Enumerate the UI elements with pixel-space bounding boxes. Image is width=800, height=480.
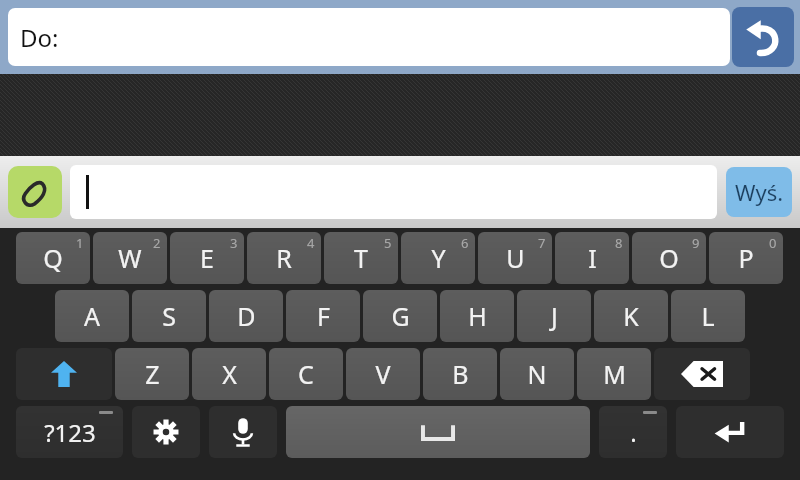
staticText: Q bbox=[43, 241, 63, 275]
button[interactable]: V bbox=[346, 348, 420, 400]
staticText: U bbox=[506, 241, 525, 275]
staticText: B bbox=[452, 357, 469, 391]
staticText: 7 bbox=[538, 234, 546, 252]
button[interactable]: Y bbox=[401, 232, 475, 284]
staticText: M bbox=[603, 357, 626, 391]
button[interactable]: W bbox=[93, 232, 167, 284]
button[interactable]: Attach bbox=[8, 166, 62, 218]
button[interactable]: T bbox=[324, 232, 398, 284]
staticText: 3 bbox=[230, 234, 238, 252]
button[interactable]: Do: bbox=[8, 8, 730, 66]
button[interactable]: H bbox=[440, 290, 514, 342]
staticText: I bbox=[588, 241, 597, 275]
staticText: N bbox=[527, 357, 547, 391]
button[interactable]: B bbox=[423, 348, 497, 400]
staticText: 9 bbox=[692, 234, 700, 252]
staticText: T bbox=[354, 241, 368, 275]
staticText: G bbox=[391, 299, 410, 333]
button[interactable]: Voice input bbox=[209, 406, 277, 458]
staticText: 6 bbox=[461, 234, 469, 252]
button[interactable]: Settings bbox=[132, 406, 200, 458]
staticText: A bbox=[84, 299, 100, 333]
staticText: 1 bbox=[76, 234, 84, 252]
staticText: H bbox=[468, 299, 487, 333]
button[interactable]: Backspace bbox=[654, 348, 750, 400]
button[interactable]: G bbox=[363, 290, 437, 342]
staticText: 5 bbox=[384, 234, 392, 252]
staticText: W bbox=[118, 241, 142, 275]
staticText: E bbox=[200, 241, 214, 275]
button[interactable]: Q bbox=[16, 232, 90, 284]
staticText: R bbox=[276, 241, 292, 275]
button[interactable]: Wyś. bbox=[726, 167, 792, 217]
button[interactable]: S bbox=[132, 290, 206, 342]
staticText: J bbox=[551, 299, 558, 333]
button[interactable]: E bbox=[170, 232, 244, 284]
staticText: V bbox=[375, 357, 391, 391]
button[interactable]: U bbox=[478, 232, 552, 284]
button[interactable]: C bbox=[269, 348, 343, 400]
staticText: S bbox=[162, 299, 176, 333]
button[interactable]: A bbox=[55, 290, 129, 342]
staticText: Y bbox=[431, 241, 446, 275]
staticText: 0 bbox=[769, 234, 777, 252]
button[interactable]: . bbox=[599, 406, 667, 458]
button[interactable]: ?123 bbox=[16, 406, 123, 458]
staticText: K bbox=[623, 299, 639, 333]
staticText: ?123 bbox=[44, 416, 96, 449]
button[interactable]: O bbox=[632, 232, 706, 284]
staticText: Z bbox=[145, 357, 160, 391]
staticText: P bbox=[738, 241, 754, 275]
button[interactable]: Back bbox=[732, 7, 794, 67]
staticText: D bbox=[237, 299, 256, 333]
button[interactable]: Enter bbox=[676, 406, 784, 458]
button[interactable]: M bbox=[577, 348, 651, 400]
staticText: O bbox=[659, 241, 679, 275]
button[interactable]: R bbox=[247, 232, 321, 284]
button[interactable]: I bbox=[555, 232, 629, 284]
button[interactable]: D bbox=[209, 290, 283, 342]
staticText: Do: bbox=[20, 21, 59, 54]
staticText: 2 bbox=[153, 234, 161, 252]
button[interactable]: N bbox=[500, 348, 574, 400]
button[interactable]: F bbox=[286, 290, 360, 342]
button[interactable]: Space bbox=[286, 406, 590, 458]
button[interactable]: L bbox=[671, 290, 745, 342]
staticText: Wyś. bbox=[735, 177, 784, 207]
button[interactable]: Z bbox=[115, 348, 189, 400]
staticText: X bbox=[222, 357, 237, 391]
button[interactable] bbox=[70, 165, 717, 219]
staticText: F bbox=[317, 299, 330, 333]
staticText: 8 bbox=[615, 234, 623, 252]
button[interactable]: J bbox=[517, 290, 591, 342]
button[interactable]: Shift bbox=[16, 348, 112, 400]
button[interactable]: K bbox=[594, 290, 668, 342]
staticText: L bbox=[701, 299, 715, 333]
button[interactable]: P bbox=[709, 232, 783, 284]
staticText: C bbox=[298, 357, 314, 391]
staticText: 4 bbox=[307, 234, 315, 252]
button[interactable]: X bbox=[192, 348, 266, 400]
staticText: . bbox=[630, 416, 637, 449]
